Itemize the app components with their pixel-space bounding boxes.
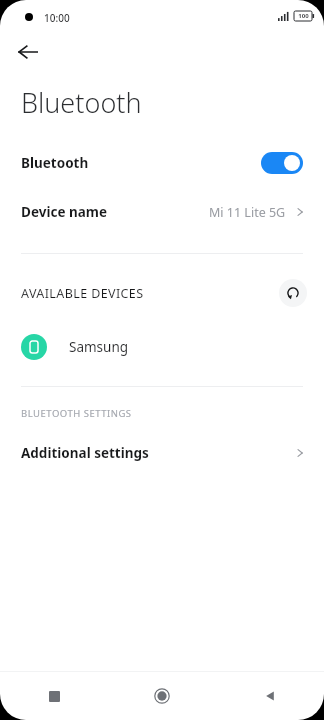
staticText: AVAILABLE DEVICES xyxy=(21,285,144,302)
button[interactable]: Back xyxy=(0,32,56,72)
button[interactable]: Refresh xyxy=(279,279,307,307)
button[interactable]: Bluetooth xyxy=(0,141,324,185)
button[interactable]: Device name xyxy=(0,191,324,233)
staticText: 100 xyxy=(298,12,309,20)
staticText: Samsung xyxy=(69,338,129,356)
button[interactable]: Bluetooth toggle xyxy=(261,152,303,174)
button[interactable]: Back xyxy=(216,672,324,720)
staticText: Device name xyxy=(21,203,108,221)
button[interactable]: Samsung xyxy=(0,326,324,368)
staticText: BLUETOOTH SETTINGS xyxy=(21,407,132,420)
button[interactable]: Additional settings xyxy=(0,434,324,472)
staticText: Mi 11 Lite 5G xyxy=(209,204,286,221)
staticText: 10:00 xyxy=(44,11,70,25)
staticText: Additional settings xyxy=(21,444,149,462)
button[interactable]: Recents xyxy=(0,672,108,720)
button[interactable]: Home xyxy=(108,672,216,720)
staticText: Bluetooth xyxy=(21,84,142,121)
staticText: Bluetooth xyxy=(21,154,89,172)
